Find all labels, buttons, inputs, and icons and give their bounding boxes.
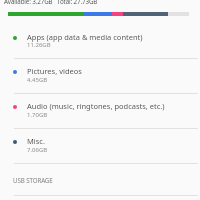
staticText: Pictures, videos (27, 66, 82, 76)
staticText: Apps (app data & media content) (27, 32, 143, 42)
staticText: 4.45GB (27, 76, 48, 84)
staticText: USB STORAGE (13, 176, 53, 184)
button[interactable] (0, 92, 200, 127)
staticText: Misc. (27, 136, 45, 146)
staticText: 7.06GB (27, 146, 48, 154)
staticText: Audio (music, ringtones, podcasts, etc.) (27, 101, 165, 111)
button[interactable] (0, 23, 200, 58)
button[interactable] (0, 127, 200, 162)
staticText: Total: 27.73GB (57, 0, 98, 5)
staticText: 1.70GB (27, 111, 48, 119)
staticText: Available: 3.27GB (4, 0, 53, 5)
button[interactable] (0, 57, 200, 92)
staticText: 11.26GB (27, 41, 51, 49)
